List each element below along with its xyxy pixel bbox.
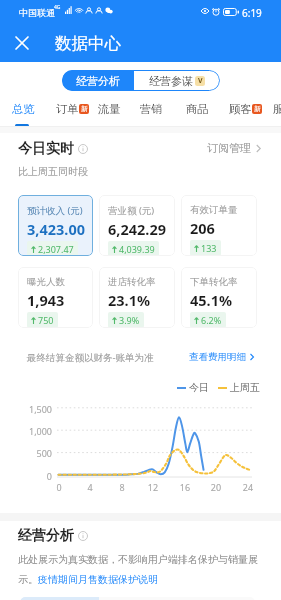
staticText: 今日实时 <box>18 140 74 158</box>
staticText: 45.1% <box>190 290 233 310</box>
staticText: 商品 <box>186 102 209 116</box>
button[interactable]: 预计收入 (元) <box>18 195 93 256</box>
staticText: 6:19 <box>242 6 262 20</box>
staticText: 下单转化率 <box>190 276 238 288</box>
button[interactable]: 疫情期间月售数据保护说明 <box>38 573 158 586</box>
staticText: 23.1% <box>108 290 151 310</box>
staticText: 750 <box>38 314 54 326</box>
staticText: 1,000 <box>0 425 52 437</box>
staticText: 0 <box>0 470 52 482</box>
button[interactable]: 订单 <box>49 98 96 120</box>
staticText: 6.2% <box>201 314 222 326</box>
staticText: 新 <box>81 105 88 113</box>
staticText: 比上周五同时段 <box>18 165 88 178</box>
staticText: 流量 <box>98 102 121 116</box>
staticText: V <box>198 76 203 86</box>
staticText: 6,242.29 <box>108 219 166 239</box>
staticText: 4 <box>80 481 100 493</box>
staticText: 顾客 <box>229 102 252 116</box>
staticText: 最终结算金额以财务-账单为准 <box>27 351 154 364</box>
staticText: 经营分析 <box>76 74 120 88</box>
button[interactable]: 总览 <box>5 98 42 120</box>
button[interactable]: 顾客 <box>222 98 269 120</box>
button[interactable]: 查看费用明细 <box>189 351 255 363</box>
staticText: 16 <box>175 481 195 493</box>
button[interactable]: 营销 <box>133 98 170 120</box>
staticText: 此处展示为真实数据，不影响用户端排名保护与销量展 <box>18 553 258 566</box>
staticText: 中国联通 <box>19 7 55 18</box>
staticText: 500 <box>0 447 52 459</box>
staticText: 12 <box>143 481 163 493</box>
staticText: 服 <box>273 102 281 116</box>
staticText: 示。 <box>18 573 38 586</box>
staticText: 1,500 <box>0 403 52 415</box>
staticText: 数据中心 <box>55 33 121 54</box>
button[interactable]: 下单转化率 <box>181 267 257 328</box>
button[interactable]: 流量 <box>91 98 128 120</box>
staticText: 3,423.00 <box>27 219 85 239</box>
staticText: 营业额 (元) <box>108 204 155 217</box>
staticText: 订阅管理 <box>207 141 251 155</box>
staticText: 3.9% <box>119 314 140 326</box>
staticText: 新 <box>254 105 261 113</box>
button[interactable]: 商品 <box>179 98 216 120</box>
button[interactable]: 经营参谋 <box>134 70 220 91</box>
staticText: 20 <box>206 481 226 493</box>
staticText: 0 <box>49 481 69 493</box>
button[interactable]: 订阅管理 <box>207 141 262 155</box>
staticText: 1,943 <box>27 290 65 310</box>
button[interactable]: Close <box>11 32 33 54</box>
staticText: 今日 <box>189 381 209 394</box>
button[interactable]: 经营分析 <box>62 70 134 91</box>
staticText: 4,039.39 <box>119 243 155 255</box>
staticText: 上周五 <box>230 381 260 394</box>
staticText: 有效订单量 <box>190 204 238 216</box>
staticText: 133 <box>201 242 217 254</box>
staticText: 曝光人数 <box>27 276 65 288</box>
staticText: 进店转化率 <box>108 276 156 288</box>
staticText: 查看费用明细 <box>189 351 246 363</box>
button[interactable]: 曝光人数 <box>18 267 93 328</box>
button[interactable]: 进店转化率 <box>99 267 175 328</box>
staticText: 2,307.47 <box>38 243 74 255</box>
staticText: 24 <box>238 481 258 493</box>
staticText: 营销 <box>140 102 163 116</box>
staticText: 经营分析 <box>18 527 74 545</box>
staticText: 总览 <box>12 102 35 116</box>
staticText: 8 <box>112 481 132 493</box>
staticText: 206 <box>190 218 215 238</box>
staticText: 预计收入 (元) <box>27 204 83 217</box>
staticText: 订单 <box>56 102 79 116</box>
button[interactable]: 服 <box>266 98 281 120</box>
staticText: 4G <box>54 4 61 11</box>
staticText: 经营参谋 <box>149 74 193 88</box>
button[interactable]: 营业额 (元) <box>99 195 175 256</box>
button[interactable]: 有效订单量 <box>181 195 257 256</box>
